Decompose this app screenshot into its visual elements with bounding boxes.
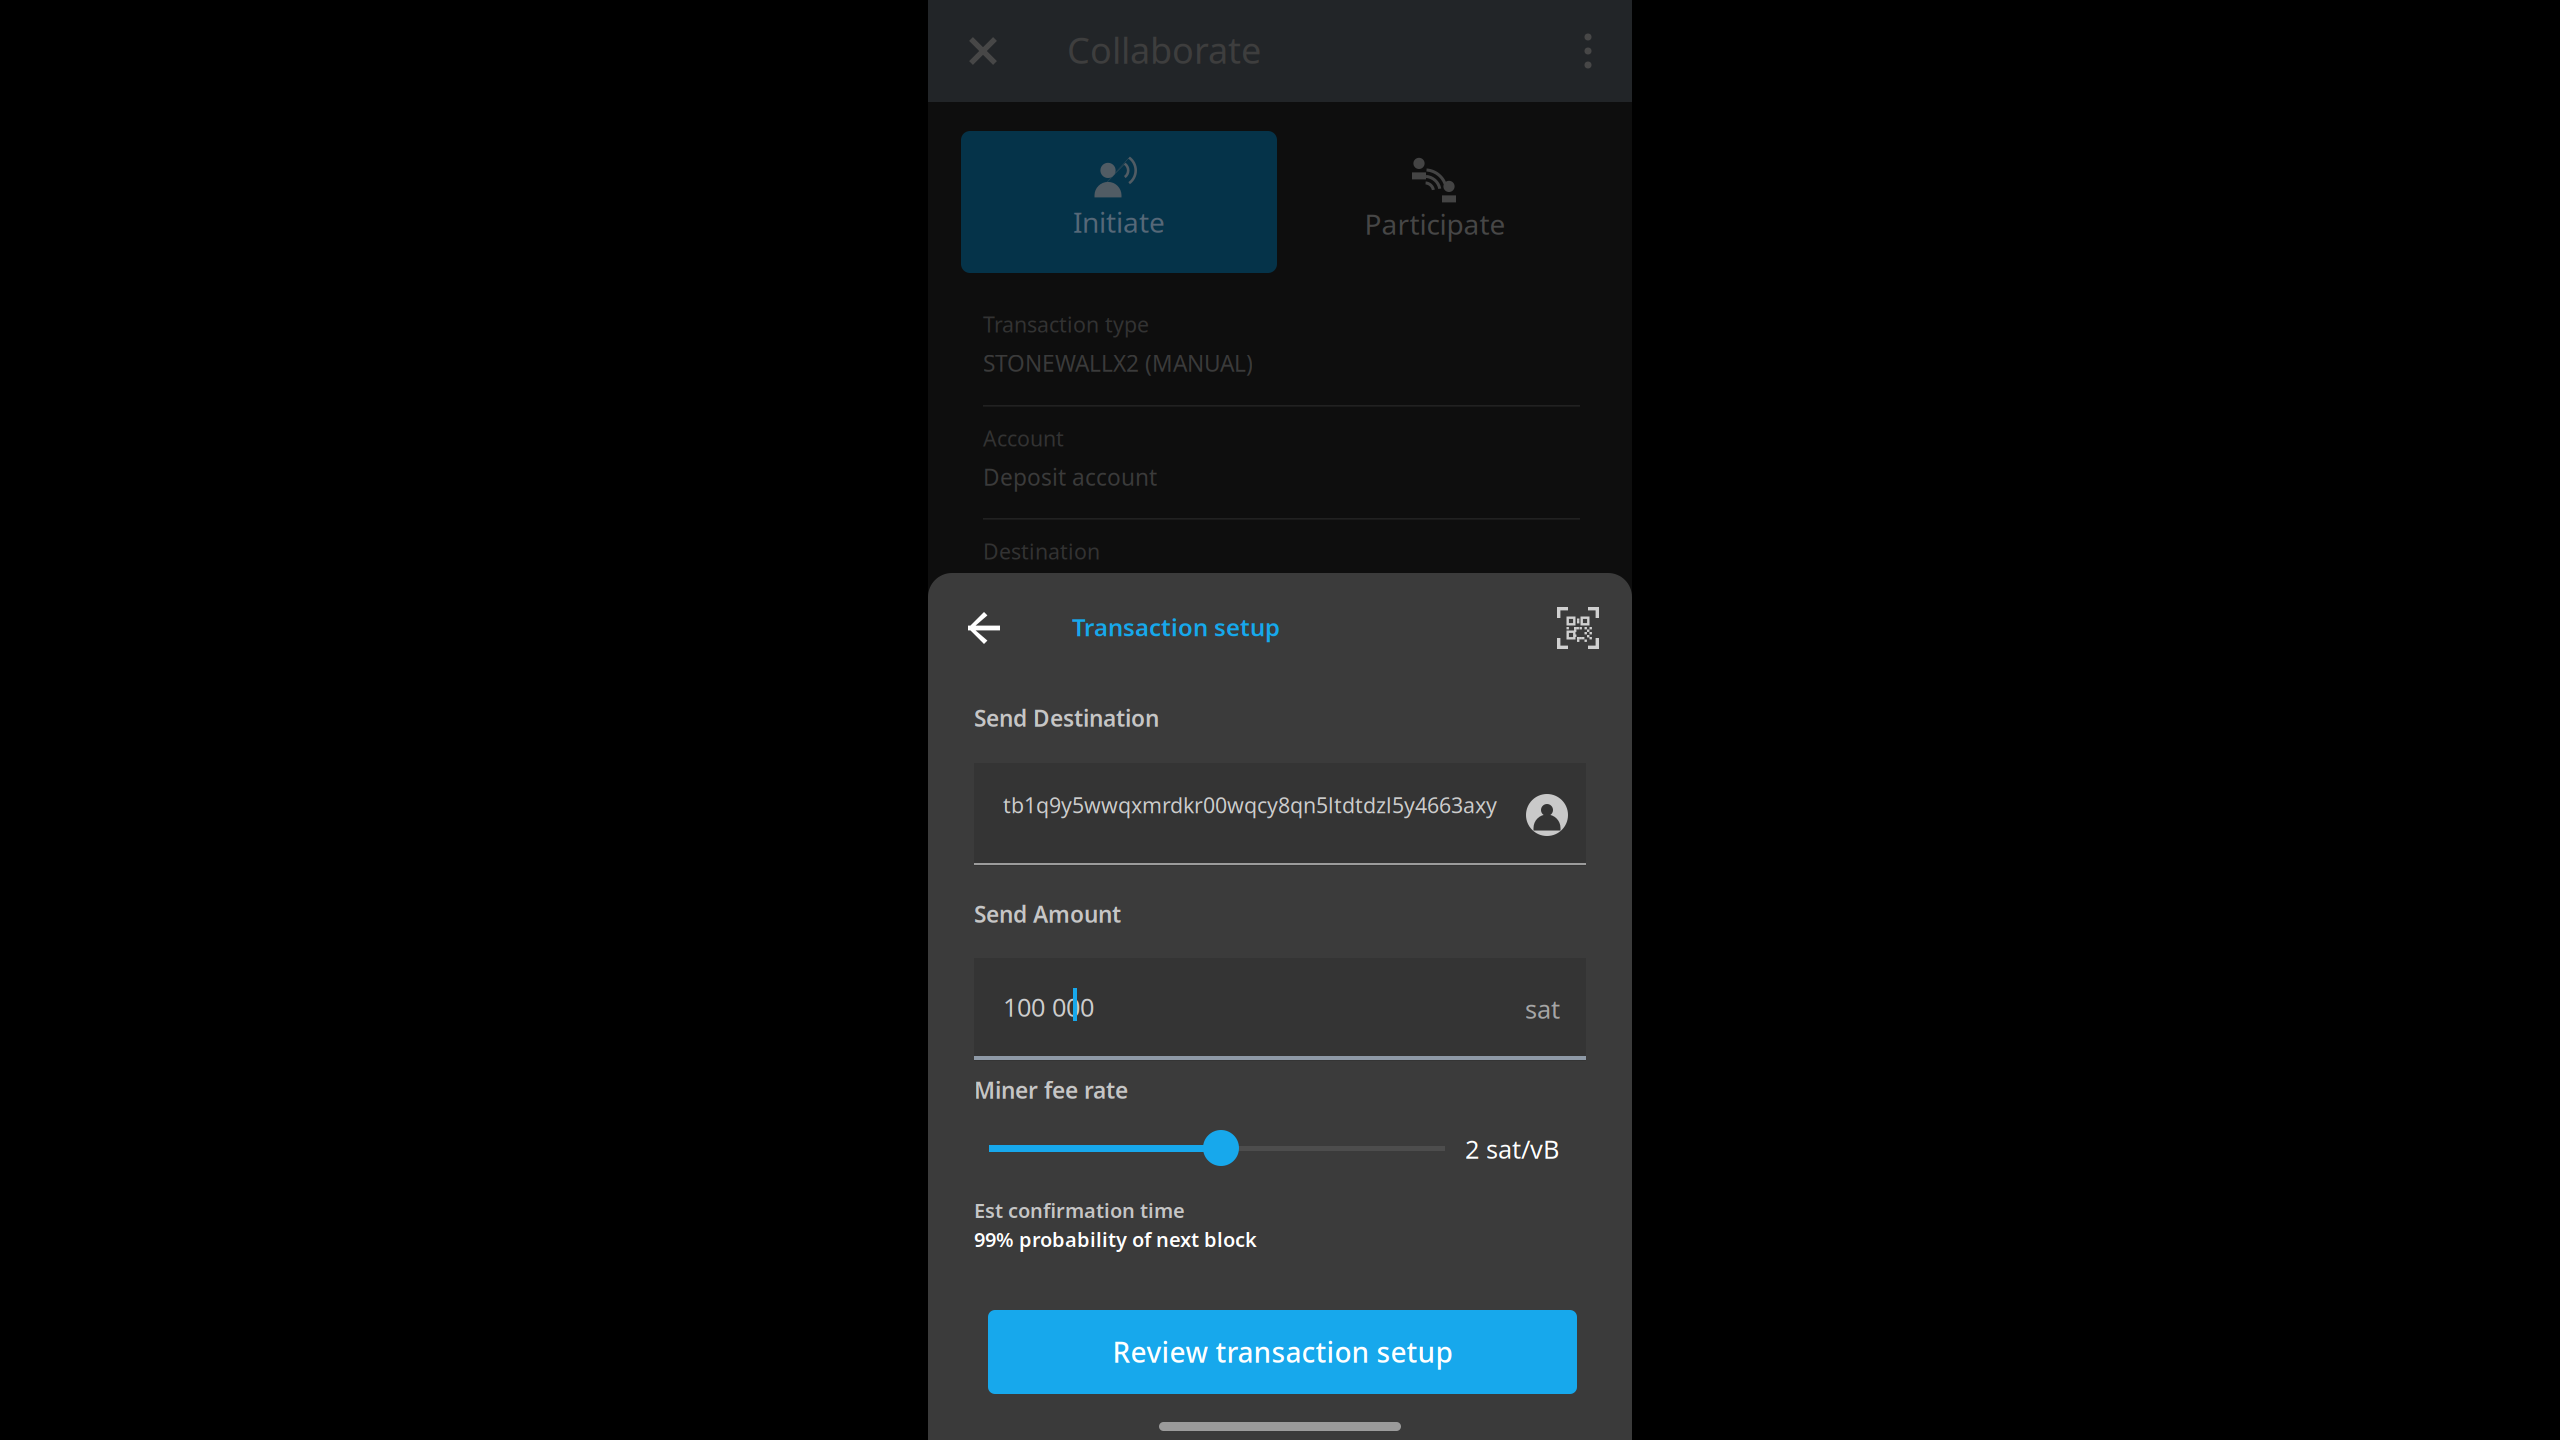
button[interactable]: Participate	[1277, 131, 1593, 273]
staticText: 99% probability of next block	[974, 1226, 1257, 1253]
button[interactable]: Initiate	[961, 131, 1277, 273]
staticText: Miner fee rate	[974, 1075, 1128, 1105]
staticText: Send Destination	[974, 703, 1159, 733]
staticText: 2 sat/vB	[1465, 1132, 1559, 1166]
staticText: sat	[1525, 992, 1560, 1026]
staticText: Initiate	[1073, 203, 1165, 241]
button[interactable]: Review transaction setup	[988, 1310, 1577, 1394]
staticText: Transaction setup	[1072, 611, 1280, 643]
staticText: Deposit account	[983, 462, 1157, 492]
staticText: Review transaction setup	[1112, 1333, 1452, 1371]
staticText: Account	[983, 424, 1064, 452]
button[interactable]: Send amount	[974, 958, 1586, 1063]
button[interactable]: Close	[945, 13, 1021, 89]
staticText: STONEWALLX2 (MANUAL)	[983, 348, 1253, 378]
staticText: Est confirmation time	[974, 1197, 1185, 1224]
staticText: Transaction type	[983, 310, 1149, 338]
staticText: tb1q9y5wwqxmrdkr00wqcy8qn5ltdtdzl5y4663a…	[1003, 791, 1497, 819]
staticText: 100 000	[1003, 990, 1094, 1024]
button[interactable]: Scan QR code	[1550, 600, 1606, 656]
button[interactable]: Send destination address	[974, 763, 1586, 868]
button[interactable]: Back	[949, 600, 1019, 656]
staticText: Destination	[983, 537, 1100, 565]
staticText: Participate	[1364, 205, 1505, 243]
button[interactable]: More options	[1560, 16, 1616, 86]
staticText: Collaborate	[1067, 26, 1261, 74]
staticText: Send Amount	[974, 899, 1121, 929]
